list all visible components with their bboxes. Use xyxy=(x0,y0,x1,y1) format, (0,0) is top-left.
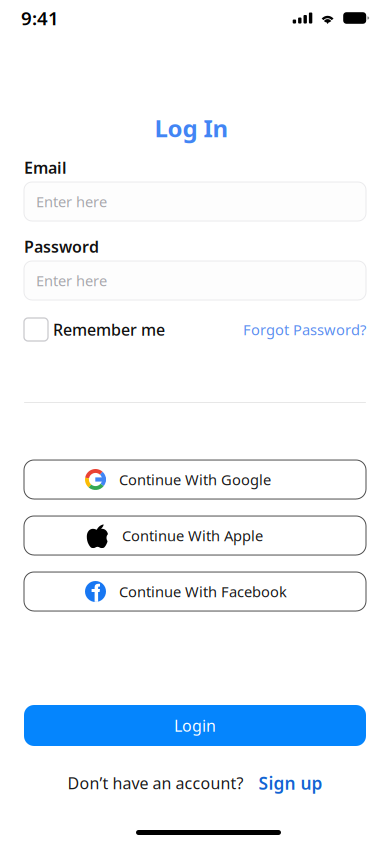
staticText: Enter here xyxy=(36,192,107,211)
button[interactable]: Login xyxy=(24,705,366,746)
button[interactable]: Continue With Facebook xyxy=(24,572,366,611)
staticText: Don’t have an account? xyxy=(67,772,243,794)
staticText: Enter here xyxy=(36,271,107,290)
staticText: Password xyxy=(24,236,99,257)
button[interactable]: Sign up xyxy=(243,771,322,794)
staticText: Forgot Password? xyxy=(243,320,366,339)
staticText: Login xyxy=(174,715,216,736)
button[interactable]: Continue With Google xyxy=(24,460,366,499)
staticText: 9:41 xyxy=(21,6,59,30)
button[interactable]: Forgot Password? xyxy=(243,320,366,339)
staticText: Remember me xyxy=(53,319,165,340)
staticText: Email xyxy=(24,157,67,178)
staticText: Sign up xyxy=(258,771,322,794)
staticText: Continue With Facebook xyxy=(119,582,287,601)
staticText: Log In xyxy=(154,112,228,144)
button[interactable]: Remember me xyxy=(24,318,165,341)
staticText: Continue With Google xyxy=(119,470,271,489)
button[interactable]: Continue With Apple xyxy=(24,516,366,555)
staticText: Continue With Apple xyxy=(122,526,263,545)
